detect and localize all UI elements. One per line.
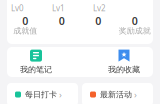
staticText: 奖励成就	[119, 26, 151, 36]
staticText: 我的笔记	[20, 65, 52, 74]
staticText: Lv0	[11, 3, 24, 13]
staticText: 每日打卡	[25, 90, 57, 99]
staticText: ›	[59, 88, 62, 101]
staticText: 最新活动	[100, 90, 132, 99]
staticText: 0	[95, 14, 101, 28]
staticText: ›	[134, 88, 137, 101]
button[interactable]: 我的笔记	[20, 50, 52, 74]
button[interactable]: 我的收藏	[108, 50, 140, 74]
staticText: 我的收藏	[108, 65, 140, 74]
button[interactable]: 最新活动	[82, 83, 153, 104]
staticText: 成就值	[13, 26, 37, 36]
button[interactable]: 每日打卡	[7, 83, 78, 104]
staticText: 0	[59, 14, 65, 28]
staticText: 0	[132, 14, 138, 28]
staticText: Lv2	[93, 3, 106, 13]
staticText: Lv1	[52, 3, 65, 13]
staticText: 0	[22, 14, 28, 28]
